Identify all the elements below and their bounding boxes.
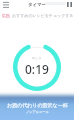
button[interactable]: Menu	[1, 0, 10, 9]
staticText: のこり	[32, 56, 42, 60]
staticText: お酒の代わりの贅沢な一杯	[7, 102, 68, 108]
button[interactable]: Pause timer	[65, 0, 74, 9]
staticText: ノンアルコール	[26, 110, 49, 114]
button[interactable]: 広告	[2, 12, 74, 18]
staticText: おすすめのレシピをチェックする	[12, 13, 74, 18]
staticText: 0:19	[25, 61, 49, 77]
staticText: タイマー	[28, 2, 46, 8]
button[interactable]: お酒の代わりの贅沢な一杯	[0, 90, 74, 120]
staticText: 広告	[2, 13, 10, 18]
